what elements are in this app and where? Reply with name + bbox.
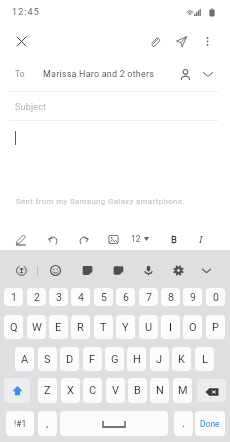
button[interactable]: L — [195, 347, 214, 371]
button[interactable]: G — [105, 347, 124, 371]
staticText: O — [189, 321, 197, 334]
button[interactable]: K — [172, 347, 191, 371]
button[interactable]: Expand recipients — [199, 57, 217, 91]
staticText: V — [112, 384, 120, 397]
staticText: I — [199, 233, 203, 246]
button[interactable]: C — [83, 378, 102, 403]
button[interactable]: O — [183, 315, 202, 339]
button[interactable]: 9 — [183, 288, 202, 306]
button[interactable]: Shift — [4, 378, 30, 403]
button[interactable]: 1 — [4, 288, 23, 306]
button[interactable]: More options — [199, 25, 215, 57]
button[interactable]: W — [27, 315, 46, 339]
staticText: G — [111, 353, 119, 366]
staticText: Z — [44, 384, 51, 397]
button[interactable]: Add recipients — [176, 57, 194, 91]
button[interactable]: Attach file — [146, 25, 162, 57]
staticText: . — [182, 417, 185, 430]
button[interactable]: Insert image — [104, 228, 122, 250]
staticText: 3 — [56, 291, 62, 303]
staticText: Sent from my Samsung Galaxy smartphone. — [16, 197, 185, 206]
button[interactable]: 3 — [49, 288, 68, 306]
button[interactable]: !#1 — [6, 411, 34, 436]
button[interactable]: U — [139, 315, 158, 339]
staticText: 7 — [146, 291, 152, 303]
button[interactable]: . — [174, 411, 193, 436]
staticText: Y — [122, 321, 129, 334]
button[interactable]: Emoji — [46, 255, 64, 286]
staticText: Q — [10, 321, 18, 334]
button[interactable]: S — [38, 347, 57, 371]
button[interactable]: I — [192, 228, 210, 250]
staticText: E — [55, 321, 62, 334]
button[interactable]: Keyboard settings — [169, 255, 187, 286]
staticText: F — [89, 353, 96, 366]
button[interactable]: 8 — [161, 288, 180, 306]
button[interactable]: R — [71, 315, 90, 339]
staticText: 1 — [11, 291, 17, 303]
button[interactable]: E — [49, 315, 68, 339]
button[interactable]: 5 — [94, 288, 113, 306]
button[interactable]: Send — [173, 25, 189, 57]
button[interactable]: I — [161, 315, 180, 339]
staticText: !#1 — [14, 419, 27, 429]
button[interactable]: Redo — [74, 228, 92, 250]
staticText: Marissa Haro and 2 others — [43, 69, 155, 80]
staticText: To — [15, 69, 25, 79]
button[interactable]: Q — [4, 315, 23, 339]
button[interactable]: 12 — [131, 228, 149, 250]
staticText: W — [32, 321, 42, 334]
button[interactable]: , — [38, 411, 57, 436]
button[interactable]: P — [206, 315, 225, 339]
button[interactable]: Y — [116, 315, 135, 339]
staticText: C — [89, 384, 97, 397]
button[interactable]: J — [150, 347, 169, 371]
staticText: D — [66, 353, 74, 366]
staticText: H — [133, 353, 141, 366]
button[interactable]: T — [94, 315, 113, 339]
button[interactable]: Hide toolbar — [197, 255, 215, 286]
button[interactable]: H — [127, 347, 146, 371]
staticText: K — [178, 353, 185, 366]
button[interactable]: Z — [38, 378, 57, 403]
button[interactable]: Close — [9, 25, 33, 57]
staticText: , — [46, 417, 49, 430]
button[interactable]: Clipboard — [109, 255, 127, 286]
button[interactable]: Undo — [44, 228, 62, 250]
button[interactable]: Backspace — [197, 379, 226, 402]
staticText: P — [212, 321, 219, 334]
button[interactable]: Stickers — [78, 255, 96, 286]
staticText: X — [67, 384, 74, 397]
button[interactable]: M — [173, 378, 192, 403]
button[interactable]: 2 — [27, 288, 46, 306]
button[interactable]: Voice typing — [12, 255, 30, 286]
button[interactable]: V — [106, 378, 125, 403]
staticText: U — [145, 321, 153, 334]
staticText: M — [178, 384, 188, 397]
button[interactable]: Done — [195, 411, 225, 436]
staticText: Subject — [15, 102, 47, 113]
button[interactable]: B — [165, 228, 183, 250]
button[interactable]: Space — [60, 411, 168, 436]
button[interactable]: 7 — [139, 288, 158, 306]
button[interactable]: 0 — [206, 288, 225, 306]
button[interactable]: D — [60, 347, 79, 371]
staticText: I — [169, 321, 172, 334]
staticText: 12:45 — [12, 7, 40, 18]
button[interactable]: B — [128, 378, 147, 403]
button[interactable]: 4 — [71, 288, 90, 306]
button[interactable]: N — [150, 378, 169, 403]
button[interactable]: 6 — [116, 288, 135, 306]
staticText: S — [44, 353, 51, 366]
staticText: 0 — [213, 291, 219, 303]
button[interactable]: A — [15, 347, 34, 371]
button[interactable]: Voice input — [139, 255, 157, 286]
button[interactable]: X — [61, 378, 80, 403]
staticText: A — [21, 353, 29, 366]
button[interactable]: Subject — [15, 97, 47, 117]
staticText: J — [156, 353, 163, 366]
button[interactable]: Text formatting — [11, 228, 29, 250]
staticText: R — [77, 321, 84, 334]
button[interactable]: F — [83, 347, 102, 371]
staticText: 6 — [123, 291, 129, 303]
